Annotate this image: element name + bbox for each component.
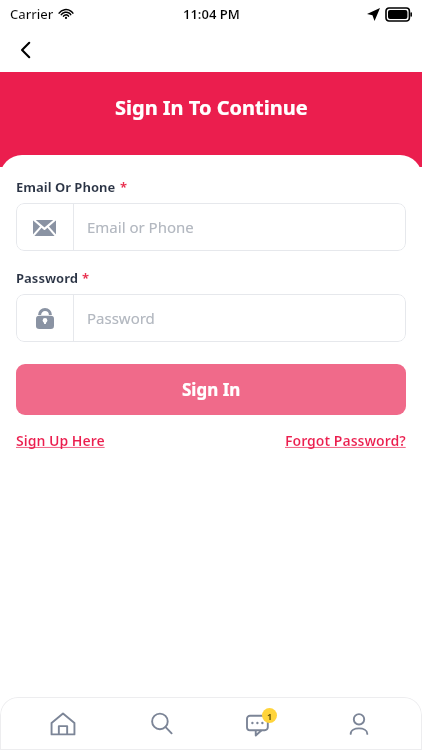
button[interactable]: Password xyxy=(16,294,406,342)
button[interactable]: Email or Phone xyxy=(16,203,406,251)
button[interactable]: Search xyxy=(126,697,198,750)
staticText: Forgot Password? xyxy=(285,431,406,450)
button[interactable]: Home xyxy=(27,697,99,750)
staticText: Sign In To Continue xyxy=(115,94,308,121)
button[interactable]: Forgot Password? xyxy=(285,431,406,450)
staticText: Email Or Phone xyxy=(16,178,116,196)
staticText: Sign Up Here xyxy=(16,431,105,450)
staticText: Carrier xyxy=(10,5,54,23)
staticText: * xyxy=(82,269,90,287)
button[interactable]: Sign In xyxy=(16,364,406,415)
button[interactable]: Sign Up Here xyxy=(16,431,105,450)
staticText: 1 xyxy=(267,710,273,722)
staticText: Email or Phone xyxy=(87,217,194,237)
staticText: Password xyxy=(87,308,155,328)
staticText: 11:04 PM xyxy=(183,5,240,23)
staticText: Sign In xyxy=(182,378,241,401)
button[interactable]: Messages xyxy=(224,697,296,750)
staticText: * xyxy=(120,178,128,196)
button[interactable]: Profile xyxy=(323,697,395,750)
staticText: Password xyxy=(16,269,78,287)
button[interactable]: Back xyxy=(8,32,44,68)
